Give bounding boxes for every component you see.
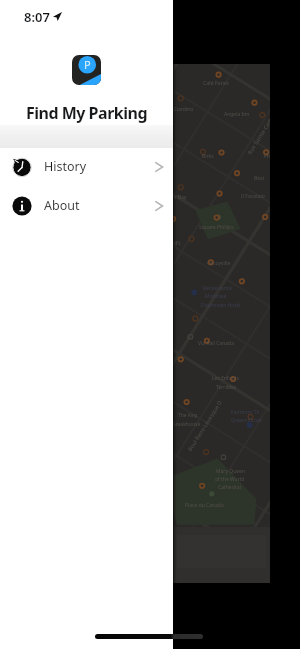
staticText: Best bbox=[254, 175, 265, 182]
staticText: 8:07 bbox=[24, 8, 50, 26]
staticText: Mary Queen bbox=[216, 468, 245, 475]
staticText: Cathedral bbox=[218, 484, 241, 491]
staticText: id's bbox=[173, 240, 181, 247]
staticText: About bbox=[44, 197, 80, 214]
staticText: Terribles bbox=[216, 384, 237, 391]
staticText: Square Phillips bbox=[199, 224, 234, 231]
staticText: Pho bbox=[264, 153, 270, 160]
staticText: Downtown Hotel bbox=[201, 302, 241, 309]
button[interactable]: About bbox=[0, 186, 173, 225]
staticText: Giardino bbox=[173, 106, 194, 113]
staticText: Rue Sainte-Catherine O bbox=[246, 99, 270, 156]
staticText: Cocoyville bbox=[207, 260, 231, 267]
staticText: Fairmont Th bbox=[231, 409, 260, 416]
staticText: Montreal bbox=[205, 293, 227, 300]
staticText: Boul Rene-Levesque O bbox=[186, 399, 223, 452]
staticText: of the World bbox=[215, 476, 245, 483]
staticText: Angela Inn bbox=[224, 111, 250, 118]
staticText: Find My Parking bbox=[0, 102, 173, 124]
staticText: Place du Canada bbox=[185, 502, 224, 509]
staticText: History bbox=[44, 158, 87, 175]
staticText: Renaissance bbox=[203, 285, 233, 292]
staticText: Café Parvis bbox=[203, 80, 229, 87]
staticText: Les Enfants bbox=[212, 375, 239, 382]
staticText: Queen Elizab bbox=[231, 417, 262, 424]
staticText: P bbox=[84, 57, 91, 72]
staticText: 's Bay bbox=[173, 194, 187, 201]
button[interactable]: Close navigation drawer bbox=[0, 0, 300, 649]
staticText: Il Focolaio bbox=[241, 193, 265, 200]
staticText: The Keg bbox=[178, 412, 197, 419]
button[interactable]: History bbox=[0, 147, 173, 186]
staticText: Birks bbox=[202, 153, 214, 160]
staticText: Via Rail Canada bbox=[198, 340, 234, 347]
staticText: Steakhouse bbox=[173, 421, 201, 428]
